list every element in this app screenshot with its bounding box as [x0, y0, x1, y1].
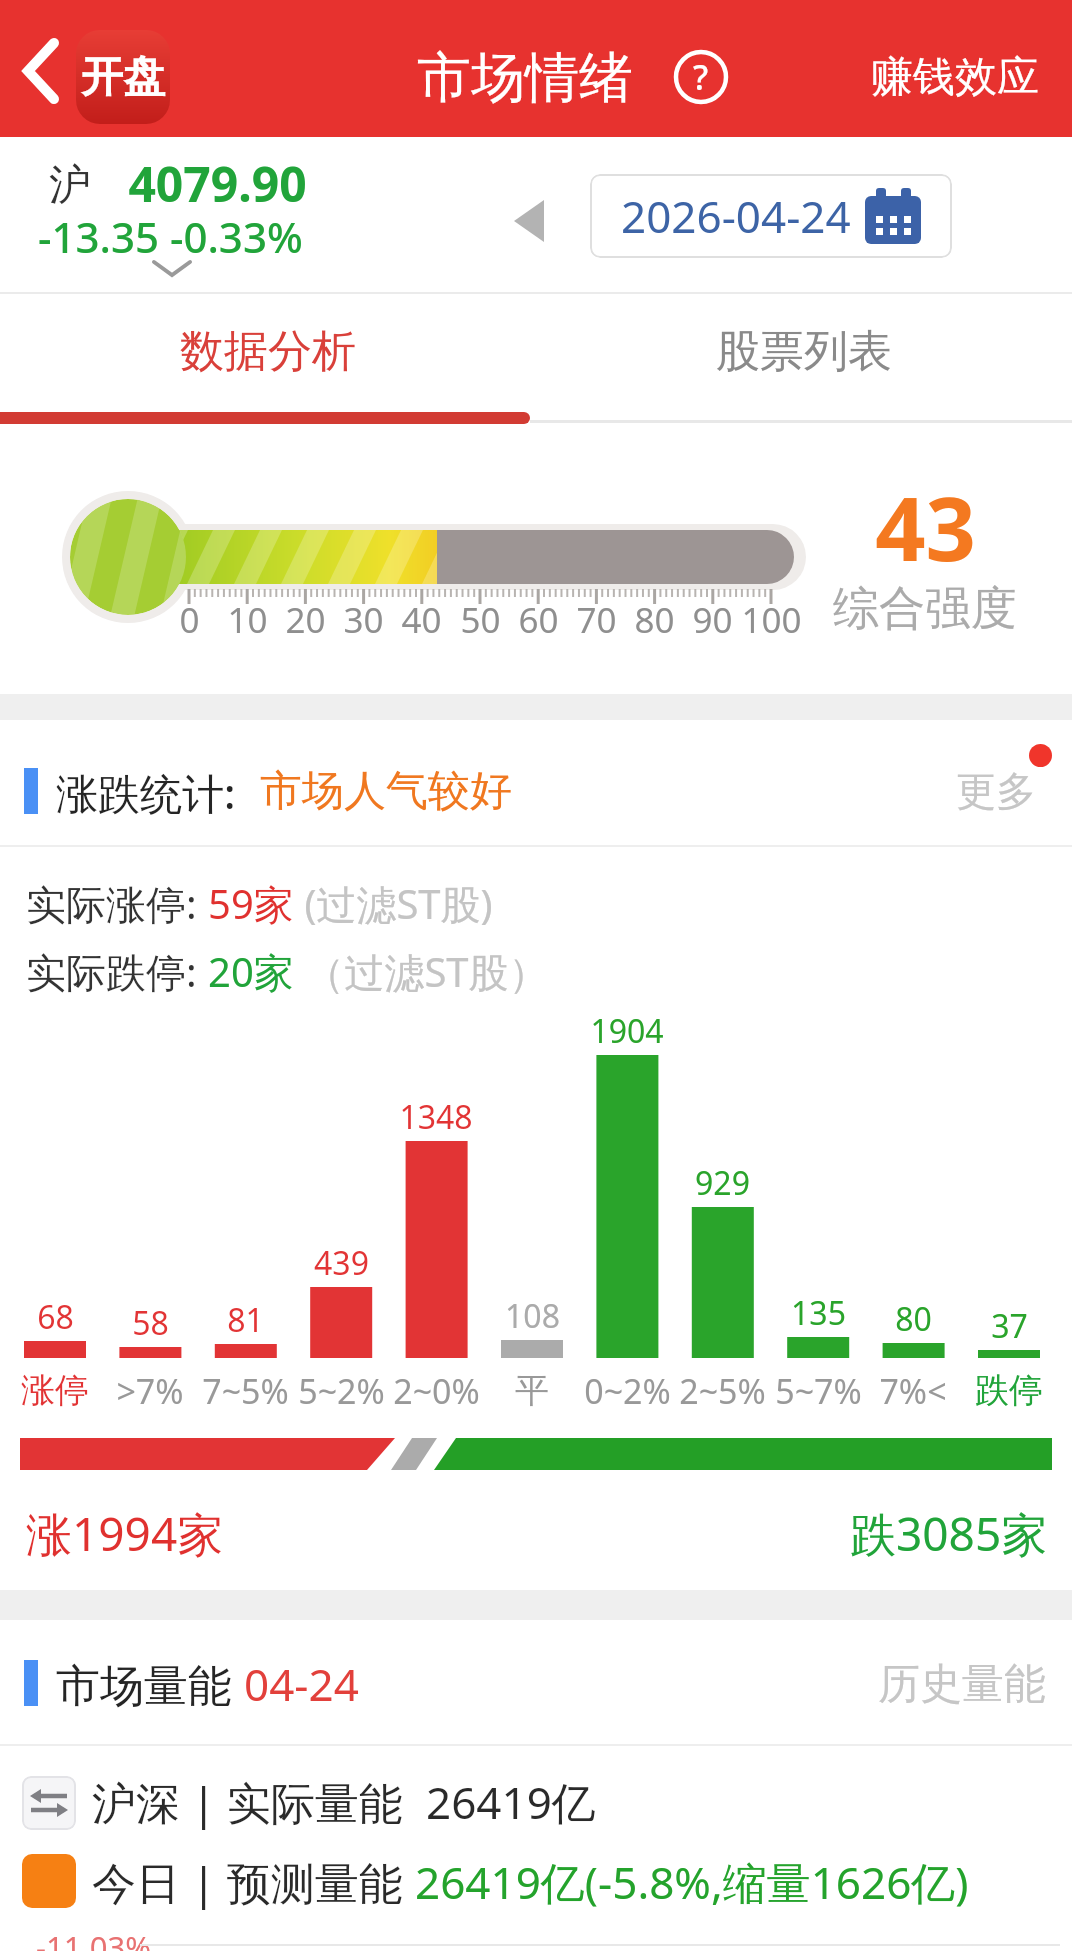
staticText: 26419亿(-5.8%,缩量1626亿): [415, 1852, 969, 1910]
staticText: 68: [37, 1295, 74, 1335]
button[interactable]: 实际跌停:: [26, 944, 726, 998]
staticText: -13.35 -0.33%: [38, 208, 303, 260]
staticText: 1348: [399, 1095, 473, 1135]
staticText: 5~2%: [298, 1368, 385, 1412]
button[interactable]: 实际涨停:: [26, 876, 726, 930]
staticText: 50: [460, 596, 501, 638]
staticText: 实际涨停:: [26, 876, 208, 930]
staticText: 实际跌停:: [26, 944, 208, 998]
button[interactable]: 开盘: [76, 30, 170, 124]
staticText: 90: [692, 596, 733, 638]
staticText: ?: [693, 54, 709, 100]
staticText: (过滤ST股): [294, 876, 493, 930]
staticText: 平: [515, 1369, 549, 1412]
staticText: 沪深 | 实际量能 26419亿: [92, 1772, 596, 1830]
staticText: 2~5%: [679, 1368, 766, 1412]
staticText: 沪: [49, 159, 91, 212]
staticText: 4079.90: [128, 151, 307, 216]
staticText: 20家: [208, 944, 294, 998]
button[interactable]: 今日 | 预测量能: [92, 1852, 1042, 1910]
button[interactable]: 更多: [946, 766, 1046, 816]
staticText: 2026-04-24: [621, 186, 851, 246]
button[interactable]: [30, 145, 320, 285]
staticText: 市场人气较好: [260, 765, 512, 818]
button[interactable]: 2026-04-24: [590, 174, 952, 258]
button[interactable]: [16, 38, 64, 104]
staticText: 439: [314, 1241, 369, 1281]
staticText: 43: [875, 467, 976, 571]
staticText: 30: [343, 596, 384, 638]
staticText: 跌3085家: [850, 1502, 1048, 1560]
button[interactable]: 股票列表: [536, 316, 1072, 386]
staticText: 2~0%: [393, 1368, 480, 1412]
button[interactable]: 赚钱效应: [850, 46, 1060, 108]
staticText: 今日 | 预测量能: [92, 1852, 415, 1910]
staticText: >7%: [116, 1368, 184, 1412]
staticText: 赚钱效应: [871, 51, 1039, 104]
staticText: 80: [634, 596, 675, 638]
staticText: 60: [518, 596, 559, 638]
staticText: 跌停: [975, 1369, 1043, 1412]
staticText: 1904: [590, 1009, 664, 1049]
staticText: 80: [895, 1297, 932, 1337]
staticText: 10: [227, 596, 268, 638]
staticText: 数据分析: [180, 324, 356, 379]
staticText: 开盘: [81, 51, 165, 104]
staticText: 股票列表: [716, 324, 892, 379]
button[interactable]: 沪深 | 实际量能 26419亿: [92, 1772, 892, 1830]
staticText: 0~2%: [584, 1368, 671, 1412]
staticText: 7~5%: [202, 1368, 289, 1412]
staticText: 37: [991, 1304, 1028, 1344]
staticText: 0: [179, 596, 200, 638]
staticText: 135: [791, 1291, 846, 1331]
staticText: 81: [227, 1298, 264, 1338]
staticText: 5~7%: [775, 1368, 862, 1412]
staticText: 涨跌统计:: [56, 764, 236, 818]
button[interactable]: 历史量能: [856, 1658, 1046, 1708]
staticText: -11.03%: [36, 1926, 151, 1951]
staticText: 40: [401, 596, 442, 638]
staticText: 市场情绪: [417, 44, 633, 108]
staticText: 20: [285, 596, 326, 638]
staticText: 7%<: [879, 1368, 947, 1412]
staticText: 929: [695, 1161, 750, 1201]
staticText: 市场量能: [56, 1654, 244, 1710]
staticText: 涨停: [21, 1369, 89, 1412]
staticText: （过滤ST股）: [294, 944, 549, 998]
staticText: 100: [741, 596, 802, 638]
staticText: 70: [576, 596, 617, 638]
staticText: 04-24: [244, 1654, 359, 1710]
staticText: 59家: [208, 876, 294, 930]
staticText: 58: [132, 1301, 169, 1341]
staticText: 历史量能: [878, 1658, 1046, 1708]
staticText: 综合强度: [833, 580, 1017, 632]
staticText: 108: [505, 1294, 560, 1334]
staticText: 更多: [956, 766, 1036, 816]
button[interactable]: 数据分析: [0, 316, 536, 386]
staticText: 涨1994家: [26, 1502, 224, 1560]
